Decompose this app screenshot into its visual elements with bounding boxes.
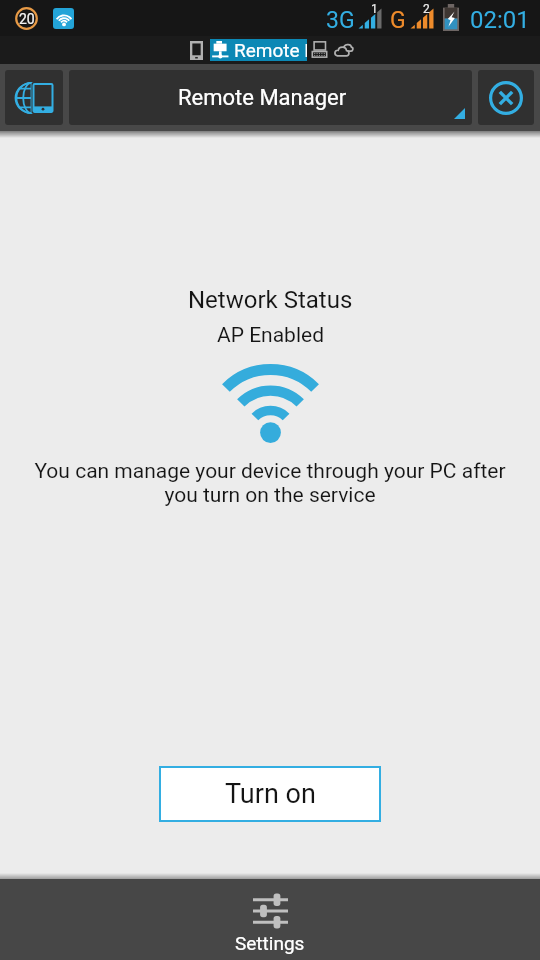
staticText: You can manage your device through your …	[22, 459, 518, 507]
button[interactable]: Turn on	[159, 766, 381, 822]
button[interactable]: Close	[478, 70, 534, 125]
button[interactable]: Remote Manager	[69, 70, 472, 125]
staticText: Turn on	[225, 778, 316, 810]
staticText: 20	[19, 11, 35, 27]
staticText: G	[390, 7, 406, 34]
staticText: 2	[423, 2, 430, 16]
staticText: 3G	[326, 7, 355, 34]
staticText: Network Status	[188, 286, 353, 314]
button[interactable]: Remote devices	[5, 70, 63, 125]
staticText: Remote Manager	[234, 39, 307, 61]
button[interactable]: Settings	[0, 879, 540, 960]
staticText: AP Enabled	[217, 323, 324, 348]
staticText: Remote Manager	[178, 85, 347, 111]
staticText: Settings	[235, 932, 305, 954]
staticText: 1	[371, 2, 378, 16]
staticText: 02:01	[470, 6, 530, 34]
